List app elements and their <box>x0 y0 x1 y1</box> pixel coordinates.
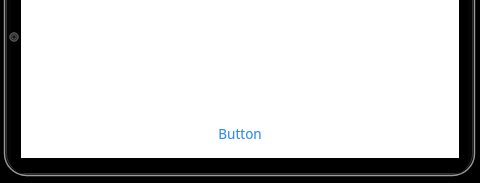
button[interactable]: Button <box>206 121 274 147</box>
staticText: Button <box>218 125 262 143</box>
